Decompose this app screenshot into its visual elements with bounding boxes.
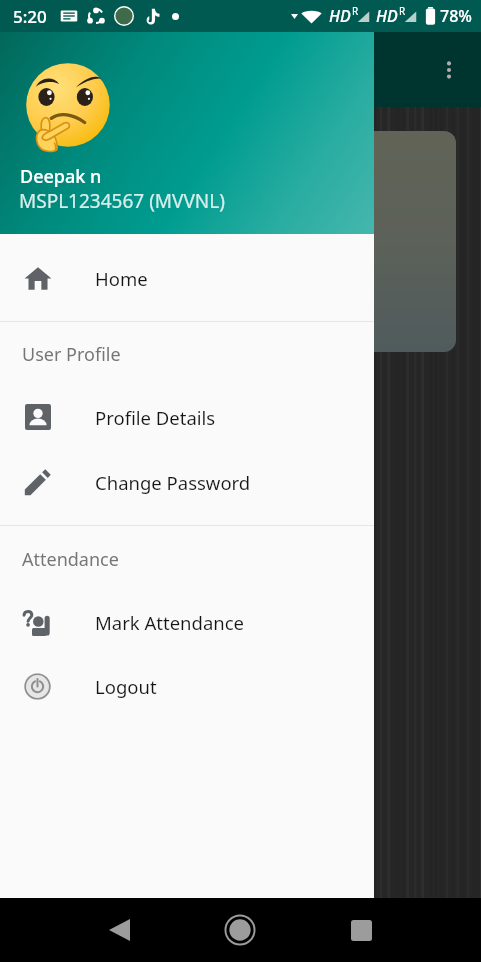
button[interactable]: Profile Details xyxy=(0,385,374,449)
staticText: R xyxy=(352,4,359,18)
staticText: Attendance xyxy=(22,547,119,572)
staticText: 5:20 xyxy=(13,5,47,28)
button[interactable]: Mark Attendance xyxy=(0,590,374,654)
button[interactable]: Back xyxy=(95,906,143,954)
button[interactable]: Logout xyxy=(0,654,374,718)
button[interactable]: Home xyxy=(216,906,264,954)
button[interactable]: Home xyxy=(0,246,374,310)
staticText: Mark Attendance xyxy=(95,610,245,635)
button[interactable]: More options xyxy=(433,54,465,86)
staticText: Change Password xyxy=(95,470,251,495)
staticText: Profile Details xyxy=(95,405,216,430)
staticText: User Profile xyxy=(22,342,121,367)
button[interactable]: Recents xyxy=(337,906,385,954)
staticText: R xyxy=(399,4,406,18)
staticText: 78% xyxy=(440,5,472,27)
staticText: HD xyxy=(376,5,398,27)
staticText: Deepak n xyxy=(20,164,102,189)
staticText: Logout xyxy=(95,674,157,699)
staticText: MSPL1234567 (MVVNL) xyxy=(19,188,225,214)
button[interactable]: Change Password xyxy=(0,450,374,514)
staticText: Home xyxy=(95,266,148,291)
staticText: HD xyxy=(329,5,351,27)
